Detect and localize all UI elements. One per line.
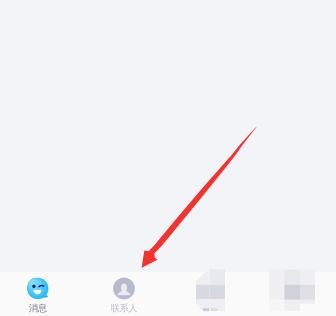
button[interactable]: 联系人 [81, 272, 167, 316]
staticText: 联系人 [110, 302, 137, 314]
button[interactable]: Third tab [167, 272, 253, 316]
staticText: 消息 [29, 302, 47, 314]
button[interactable]: Fourth tab [253, 272, 336, 316]
button[interactable]: 消息 [0, 272, 81, 316]
